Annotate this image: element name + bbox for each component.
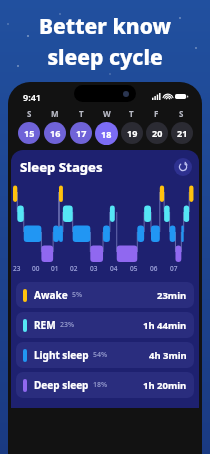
staticText: 17 xyxy=(76,127,87,139)
staticText: 05 xyxy=(130,264,138,273)
button[interactable]: Deep sleep xyxy=(16,372,194,398)
staticText: 54% xyxy=(93,350,108,360)
staticText: sleep cycle xyxy=(47,43,163,72)
staticText: 00 xyxy=(32,264,40,273)
staticText: REM xyxy=(34,318,56,332)
staticText: 23 xyxy=(13,264,21,273)
staticText: 07 xyxy=(170,264,178,273)
staticText: 1h 44min xyxy=(143,319,187,332)
staticText: S xyxy=(27,108,32,119)
staticText: T xyxy=(79,108,84,119)
staticText: 18 xyxy=(101,128,112,140)
staticText: M xyxy=(51,108,59,119)
staticText: F xyxy=(154,108,159,119)
staticText: 1h 20min xyxy=(143,379,187,392)
button[interactable]: 18 xyxy=(95,122,118,145)
button[interactable]: 16 xyxy=(44,122,66,144)
staticText: T xyxy=(129,108,134,119)
staticText: 15 xyxy=(24,127,35,139)
staticText: Light sleep xyxy=(34,348,89,362)
staticText: 02 xyxy=(70,264,78,273)
staticText: Sleep Stages xyxy=(20,158,103,176)
button[interactable]: 21 xyxy=(171,122,193,144)
staticText: 5% xyxy=(72,290,83,300)
staticText: Better know xyxy=(39,12,171,41)
staticText: 01 xyxy=(51,264,59,273)
staticText: Deep sleep xyxy=(34,378,89,392)
staticText: 21 xyxy=(177,127,188,139)
button[interactable]: 20 xyxy=(146,122,168,144)
staticText: 03 xyxy=(90,264,98,273)
staticText: 16 xyxy=(50,127,61,139)
staticText: 23% xyxy=(60,320,75,330)
staticText: 23min xyxy=(157,289,187,302)
staticText: 06 xyxy=(150,264,158,273)
staticText: W xyxy=(103,108,111,119)
button[interactable]: 17 xyxy=(70,122,92,144)
button[interactable]: Awake xyxy=(16,282,194,308)
button[interactable]: Refresh xyxy=(174,158,192,176)
button[interactable]: 19 xyxy=(121,122,143,144)
staticText: Awake xyxy=(34,288,68,302)
staticText: 4h 3min xyxy=(149,349,187,362)
staticText: S xyxy=(179,108,184,119)
staticText: 18% xyxy=(93,380,108,390)
staticText: 9:41 xyxy=(23,91,41,103)
button[interactable]: REM xyxy=(16,312,194,338)
button[interactable]: Light sleep xyxy=(16,342,194,368)
button[interactable]: 15 xyxy=(18,122,40,144)
staticText: 04 xyxy=(110,264,118,273)
staticText: 20 xyxy=(152,127,163,139)
staticText: 19 xyxy=(127,127,138,139)
